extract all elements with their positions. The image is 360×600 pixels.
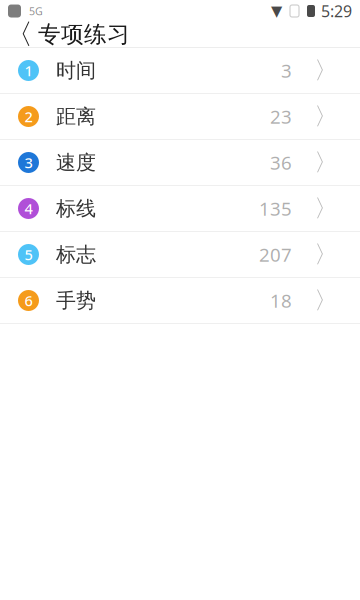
button[interactable]: 6 [0,278,360,324]
staticText: 5G [29,4,43,18]
staticText: ▼ [271,3,282,19]
staticText: 5 [24,245,32,264]
staticText: 〉 [314,240,338,269]
staticText: 3 [24,153,32,172]
staticText: 36 [270,150,292,175]
staticText: 速度 [56,150,96,175]
staticText: 〉 [314,286,338,315]
staticText: 标线 [56,196,96,221]
staticText: 〉 [314,148,338,177]
staticText: 标志 [56,242,96,267]
staticText: 手势 [56,288,96,313]
staticText: 〈 [5,17,33,52]
staticText: 〉 [314,56,338,85]
staticText: 4 [24,199,32,218]
staticText: 207 [259,242,292,267]
staticText: 〉 [314,102,338,131]
button[interactable]: 3 [0,140,360,186]
staticText: 5:29 [321,0,352,22]
staticText: 18 [270,288,292,313]
staticText: 135 [259,196,292,221]
staticText: 距离 [56,104,96,129]
staticText: 23 [270,104,292,129]
button[interactable]: 1 [0,48,360,94]
button[interactable]: 5 [0,232,360,278]
staticText: 6 [24,291,32,310]
button[interactable]: 4 [0,186,360,232]
staticText: 时间 [56,58,96,83]
staticText: 专项练习 [38,21,130,48]
staticText: 〉 [314,194,338,223]
button[interactable]: Back [0,19,38,49]
staticText: 2 [24,107,32,126]
button[interactable]: 2 [0,94,360,140]
staticText: 1 [24,61,32,80]
staticText: 3 [281,58,292,83]
